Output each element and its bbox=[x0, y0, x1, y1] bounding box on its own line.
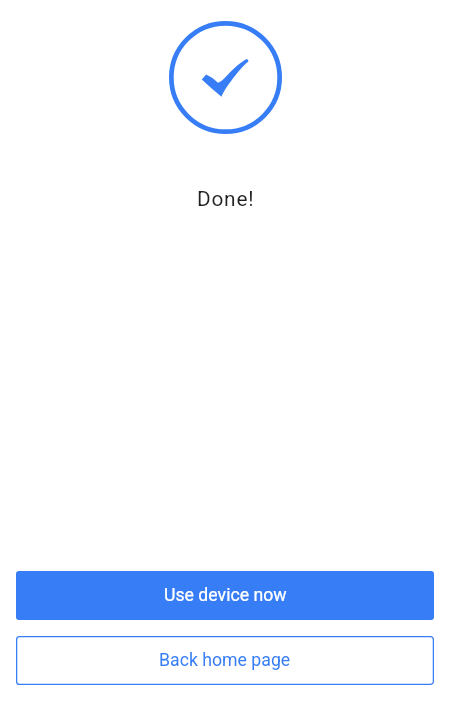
staticText: Done! bbox=[197, 187, 255, 211]
staticText: Back home page bbox=[159, 650, 291, 671]
staticText: Use device now bbox=[164, 585, 287, 606]
other: Success bbox=[169, 21, 282, 134]
button[interactable]: Use device now bbox=[16, 571, 434, 620]
button[interactable]: Back home page bbox=[16, 636, 434, 685]
